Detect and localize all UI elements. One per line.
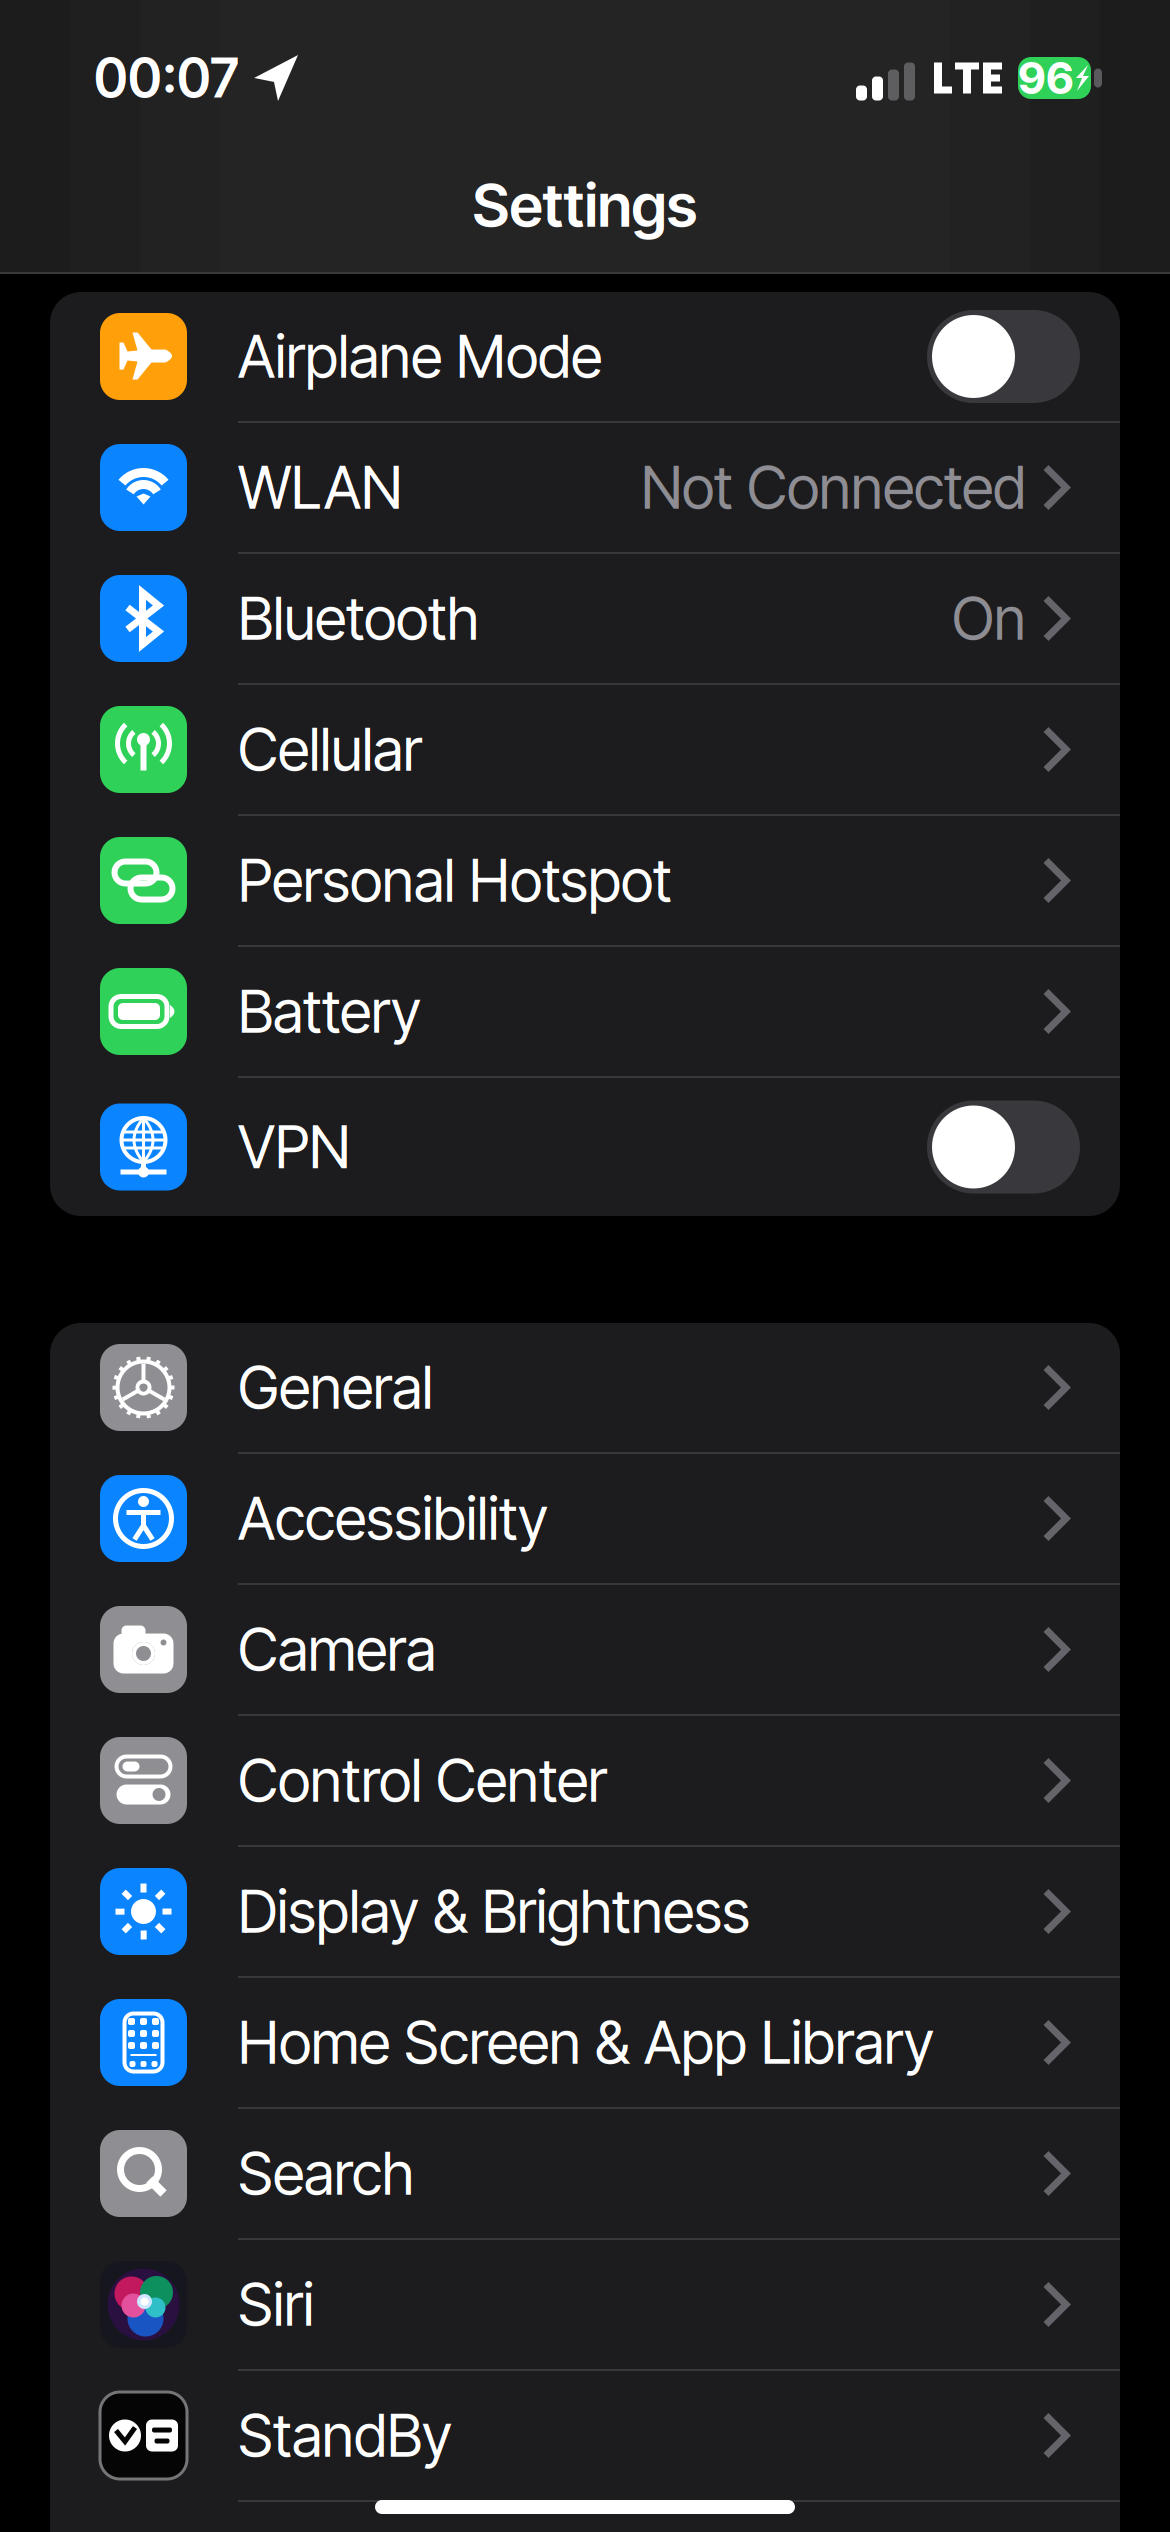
button[interactable]: Siri	[50, 2240, 1120, 2369]
button[interactable]: Control Center	[50, 1716, 1120, 1845]
staticText: Airplane Mode	[238, 321, 602, 392]
staticText: Search	[238, 2138, 414, 2209]
button[interactable]: Accessibility	[50, 1454, 1120, 1583]
staticText: Battery	[238, 976, 421, 1047]
button[interactable]: Personal Hotspot	[50, 816, 1120, 945]
staticText: Siri	[238, 2269, 314, 2340]
button[interactable]: Battery	[50, 947, 1120, 1076]
staticText: Accessibility	[238, 1483, 548, 1554]
staticText: General	[238, 1352, 433, 1423]
staticText: 96	[1018, 51, 1074, 105]
staticText: VPN	[238, 1111, 350, 1182]
button[interactable]: Home Screen & App Library	[50, 1978, 1120, 2107]
staticText: Cellular	[238, 714, 422, 785]
button[interactable]: Search	[50, 2109, 1120, 2238]
staticText: Display & Brightness	[238, 1876, 750, 1947]
button[interactable]: VPN	[50, 1078, 1120, 1216]
staticText: Control Center	[238, 1745, 607, 1816]
button[interactable]: Display & Brightness	[50, 1847, 1120, 1976]
staticText: Settings	[472, 169, 697, 241]
staticText: 00:07	[94, 46, 239, 110]
staticText: Not Connected	[641, 452, 1026, 523]
staticText: Personal Hotspot	[238, 845, 672, 916]
button[interactable]: Airplane Mode	[50, 292, 1120, 421]
staticText: Bluetooth	[238, 583, 479, 654]
staticText: WLAN	[238, 452, 402, 523]
button[interactable]: Camera	[50, 1585, 1120, 1714]
button[interactable]: Bluetooth	[50, 554, 1120, 683]
staticText: Home Screen & App Library	[238, 2007, 934, 2078]
button[interactable]: WLAN	[50, 423, 1120, 552]
button[interactable]: StandBy	[50, 2371, 1120, 2500]
staticText: StandBy	[238, 2400, 452, 2471]
staticText: Camera	[238, 1614, 436, 1685]
button[interactable]: Cellular	[50, 685, 1120, 814]
button[interactable]: General	[50, 1323, 1120, 1452]
staticText: On	[952, 583, 1026, 654]
